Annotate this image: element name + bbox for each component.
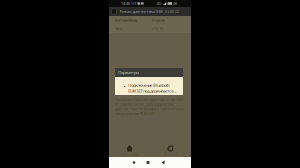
staticText: Проверьте версию адаптера и тип ЭБУ [115, 97, 183, 102]
staticText: v15.10 [152, 26, 163, 31]
staticText: в Главном меню. Для корректной [115, 101, 174, 107]
staticText: ELM327 поддерживается.... [128, 88, 177, 93]
staticText: Режим диагностики ЭБУ [119, 9, 162, 14]
staticText: оборудование ELM327. [115, 111, 155, 116]
staticText: ЧТ [131, 1, 136, 6]
button[interactable]: Recents [140, 157, 155, 168]
staticText: Подключение Bluetooth [128, 82, 169, 88]
staticText: VAZ [115, 26, 122, 31]
button[interactable]: Главное меню [109, 140, 150, 157]
staticText: Автомобиль [115, 17, 137, 23]
staticText: 46 [173, 1, 177, 6]
staticText: ВЫХОД [165, 9, 179, 14]
button[interactable]: Home [127, 157, 140, 168]
staticText: Версия [152, 17, 165, 23]
staticText: 14:45 [121, 1, 131, 6]
staticText: 4G [157, 1, 162, 6]
button[interactable]: Обновить [150, 140, 191, 157]
button[interactable]: ВЫХОД [164, 9, 179, 14]
staticText: Параметры [118, 70, 139, 75]
staticText: диагностики необходимо оригинальное [115, 106, 184, 111]
button[interactable]: Back [155, 157, 170, 168]
